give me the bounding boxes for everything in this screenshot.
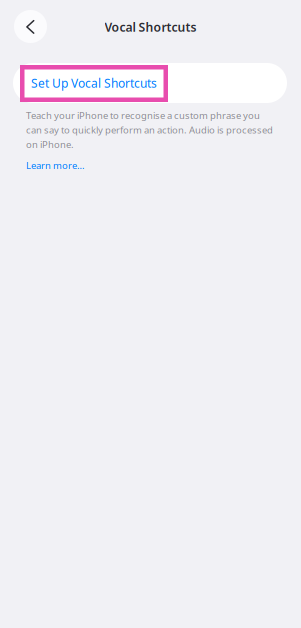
staticText: Teach your iPhone to recognise a custom …	[26, 109, 273, 151]
staticText: Vocal Shortcuts	[104, 19, 196, 35]
button[interactable]: Learn more…	[26, 159, 84, 172]
staticText: Learn more…	[26, 159, 84, 172]
button[interactable]: Back	[14, 10, 47, 43]
staticText: Set Up Vocal Shortcuts	[31, 75, 157, 91]
button[interactable]: Set Up Vocal Shortcuts	[13, 63, 287, 103]
